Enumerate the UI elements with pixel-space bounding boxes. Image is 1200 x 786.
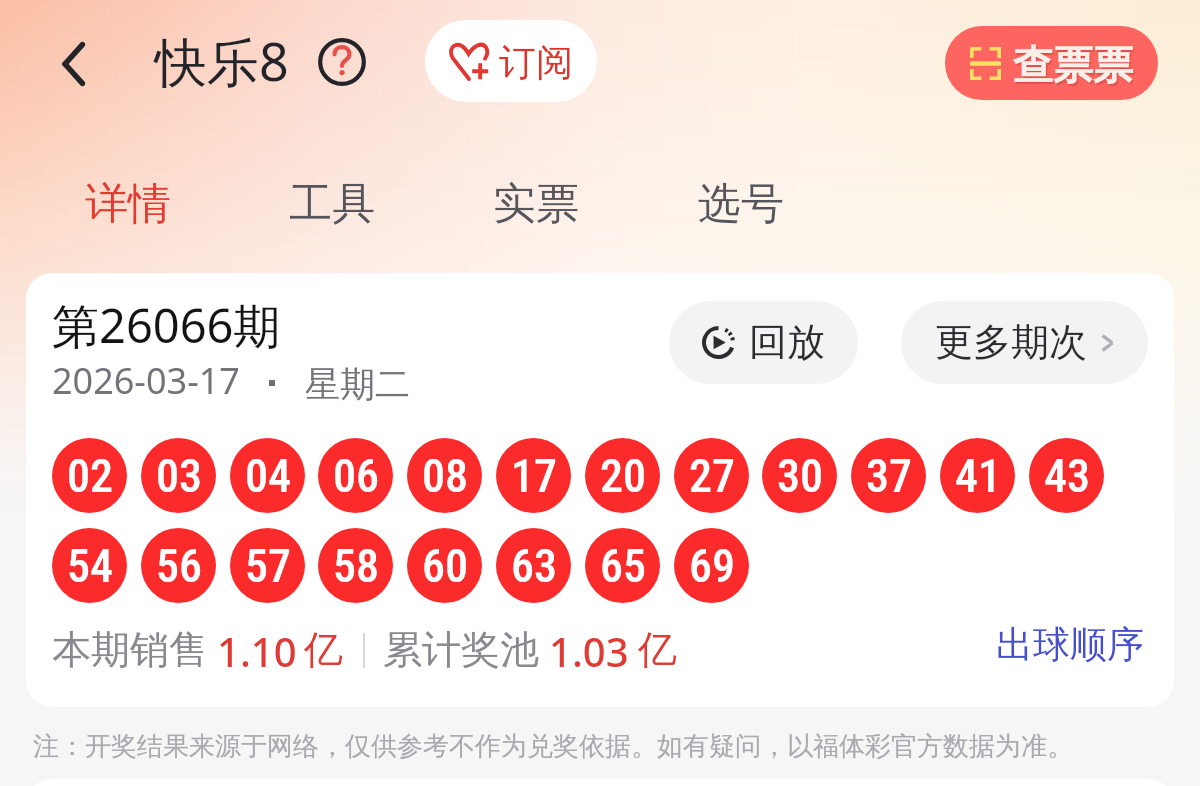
button[interactable]: 69 [674, 528, 749, 603]
button[interactable]: 41 [940, 438, 1015, 513]
staticText: 查票票 [1013, 40, 1133, 90]
staticText: 54 [67, 539, 113, 593]
staticText: 订阅 [499, 39, 573, 86]
staticText: 星期二 [305, 362, 410, 406]
staticText: 56 [156, 539, 202, 593]
staticText: 第26066期 [52, 293, 281, 357]
button[interactable]: 03 [141, 438, 216, 513]
staticText: 27 [689, 449, 735, 503]
staticText: 更多期次 [935, 318, 1087, 366]
button[interactable]: 实票 [474, 164, 598, 244]
button[interactable]: 27 [674, 438, 749, 513]
button[interactable]: 06 [318, 438, 393, 513]
button[interactable]: Back [42, 32, 106, 96]
button[interactable]: 04 [230, 438, 305, 513]
staticText: 20 [600, 449, 646, 503]
staticText: 63 [511, 539, 557, 593]
button[interactable]: 43 [1029, 438, 1104, 513]
staticText: 选号 [698, 177, 784, 231]
button[interactable]: 54 [52, 528, 127, 603]
button[interactable]: 17 [496, 438, 571, 513]
staticText: 详情 [85, 177, 171, 231]
button[interactable]: 查票票 [945, 26, 1158, 100]
staticText: 1.10 [217, 624, 297, 678]
button[interactable]: 选号 [679, 164, 803, 244]
staticText: 60 [422, 539, 468, 593]
staticText: 回放 [749, 318, 825, 366]
staticText: 02 [67, 449, 113, 503]
button[interactable]: 20 [585, 438, 660, 513]
button[interactable]: 订阅 [425, 20, 597, 102]
staticText: 快乐8 [155, 25, 289, 96]
staticText: 注：开奖结果来源于网络，仅供参考不作为兑奖依据。如有疑问，以福体彩官方数据为准。 [33, 730, 1073, 763]
staticText: 43 [1044, 449, 1090, 503]
staticText: 30 [777, 449, 823, 503]
staticText: 出球顺序 [996, 621, 1144, 668]
staticText: 04 [245, 449, 291, 503]
staticText: 本期销售 [52, 625, 208, 674]
staticText: 实票 [493, 177, 579, 231]
staticText: 08 [422, 449, 468, 503]
button[interactable]: 出球顺序 [991, 613, 1149, 675]
button[interactable]: 63 [496, 528, 571, 603]
staticText: 03 [156, 449, 202, 503]
button[interactable]: 回放 [669, 301, 858, 384]
staticText: 2026-03-17 [52, 356, 240, 405]
button[interactable]: Help [310, 30, 374, 94]
staticText: 37 [866, 449, 912, 503]
staticText: 58 [333, 539, 379, 593]
staticText: 69 [689, 539, 735, 593]
staticText: 17 [511, 449, 557, 503]
button[interactable]: 详情 [66, 164, 190, 244]
staticText: 57 [245, 539, 291, 593]
button[interactable]: 65 [585, 528, 660, 603]
staticText: 亿 [638, 625, 677, 674]
staticText: 41 [955, 449, 1001, 503]
button[interactable]: 58 [318, 528, 393, 603]
button[interactable]: 37 [851, 438, 926, 513]
button[interactable]: 60 [407, 528, 482, 603]
button[interactable]: 08 [407, 438, 482, 513]
button[interactable]: 02 [52, 438, 127, 513]
staticText: 累计奖池 [383, 625, 539, 674]
staticText: 工具 [289, 177, 375, 231]
staticText: 亿 [304, 625, 343, 674]
staticText: 06 [333, 449, 379, 503]
staticText: 65 [600, 539, 646, 593]
button[interactable]: 更多期次 [901, 301, 1148, 384]
button[interactable]: 30 [762, 438, 837, 513]
staticText: 1.03 [549, 624, 629, 678]
button[interactable]: 56 [141, 528, 216, 603]
button[interactable]: 工具 [270, 164, 394, 244]
button[interactable]: 57 [230, 528, 305, 603]
